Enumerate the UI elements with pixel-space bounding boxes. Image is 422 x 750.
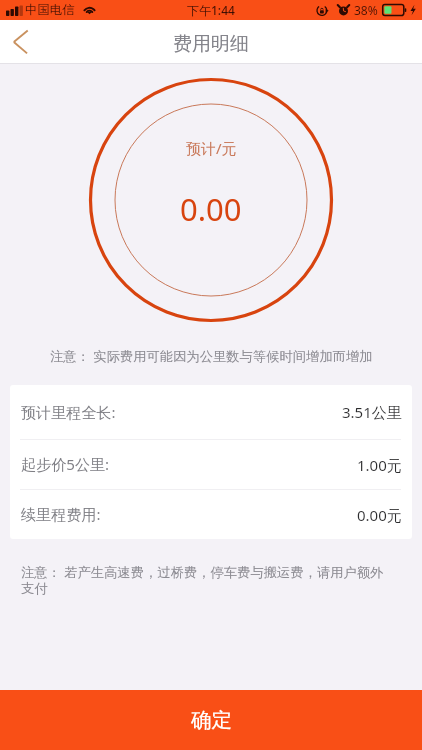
staticText: 确定 <box>191 707 232 733</box>
staticText: 0.00元 <box>357 505 402 525</box>
staticText: 注意： 若产生高速费，过桥费，停车费与搬运费，请用户额外支付 <box>21 563 395 597</box>
staticText: 中国电信 <box>25 2 75 18</box>
staticText: 费用明细 <box>173 32 249 56</box>
staticText: 38% <box>354 2 378 18</box>
staticText: 3.51公里 <box>342 402 402 422</box>
button[interactable]: Back <box>0 20 42 64</box>
staticText: 1.00元 <box>357 455 402 475</box>
staticText: 注意： 实际费用可能因为公里数与等候时间增加而增加 <box>50 347 373 365</box>
button[interactable]: 确定 <box>0 690 422 750</box>
staticText: 续里程费用: <box>21 504 101 525</box>
staticText: 预计里程全长: <box>21 402 116 423</box>
staticText: 起步价5公里: <box>21 454 110 475</box>
staticText: 0.00 <box>180 188 242 230</box>
staticText: 下午1:44 <box>187 2 235 18</box>
staticText: 预计/元 <box>186 138 237 158</box>
